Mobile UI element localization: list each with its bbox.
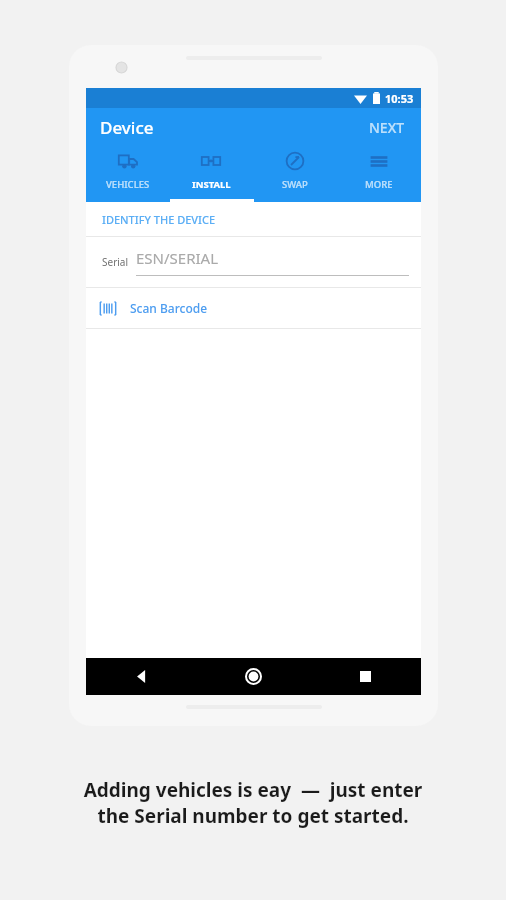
button[interactable]: Serial: [86, 237, 421, 287]
staticText: IDENTIFY THE DEVICE: [102, 212, 216, 227]
staticText: SWAP: [282, 178, 308, 191]
button[interactable]: MORE: [337, 146, 421, 202]
button[interactable]: Scan Barcode: [86, 288, 421, 328]
button[interactable]: Recent apps: [309, 658, 421, 695]
staticText: Device: [100, 116, 154, 139]
button[interactable]: NEXT: [367, 114, 407, 141]
button[interactable]: INSTALL: [169, 146, 253, 202]
staticText: Adding vehicles is eay — just enter the …: [73, 777, 433, 829]
button[interactable]: Back: [86, 658, 197, 695]
button[interactable]: SWAP: [253, 146, 337, 202]
staticText: ESN/SERIAL: [136, 248, 218, 268]
staticText: MORE: [365, 178, 393, 191]
button[interactable]: VEHICLES: [86, 146, 169, 202]
staticText: VEHICLES: [106, 178, 150, 191]
staticText: INSTALL: [192, 178, 231, 191]
staticText: NEXT: [369, 118, 405, 137]
other: Scan Barcode: [100, 302, 116, 315]
staticText: 10:53: [385, 91, 414, 106]
button[interactable]: Home: [197, 658, 309, 695]
staticText: Scan Barcode: [130, 300, 208, 316]
staticText: Serial: [102, 255, 129, 269]
